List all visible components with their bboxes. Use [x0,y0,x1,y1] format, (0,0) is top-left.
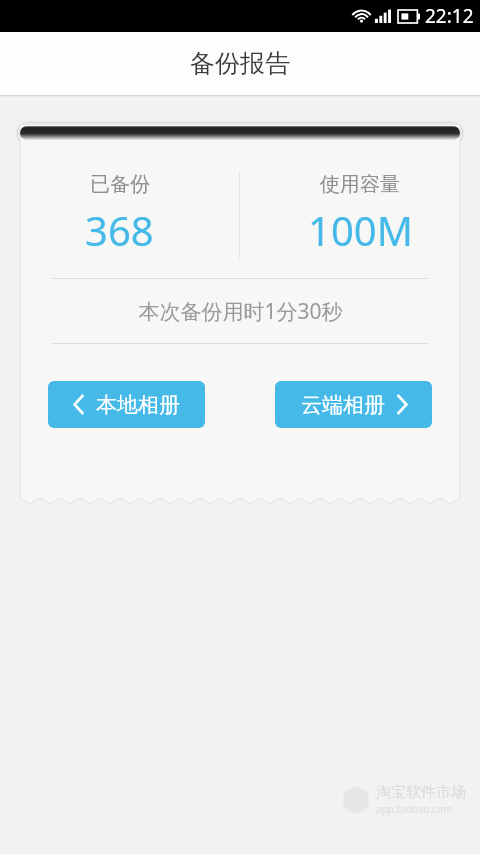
staticText: 22:12 [425,3,474,29]
staticText: 云端相册 [301,392,385,418]
button[interactable]: 本地相册 [48,381,205,428]
staticText: 本地相册 [96,392,180,418]
staticText: 100M [308,203,413,257]
staticText: app.taobao.com [376,802,453,816]
staticText: 已备份 [90,172,150,197]
staticText: 使用容量 [320,172,400,197]
staticText: 368 [85,203,154,257]
staticText: 本次备份用时1分30秒 [138,297,343,326]
button[interactable]: 云端相册 [275,381,432,428]
staticText: 备份报告 [190,48,290,79]
staticText: 淘宝软件市场 [376,783,466,802]
